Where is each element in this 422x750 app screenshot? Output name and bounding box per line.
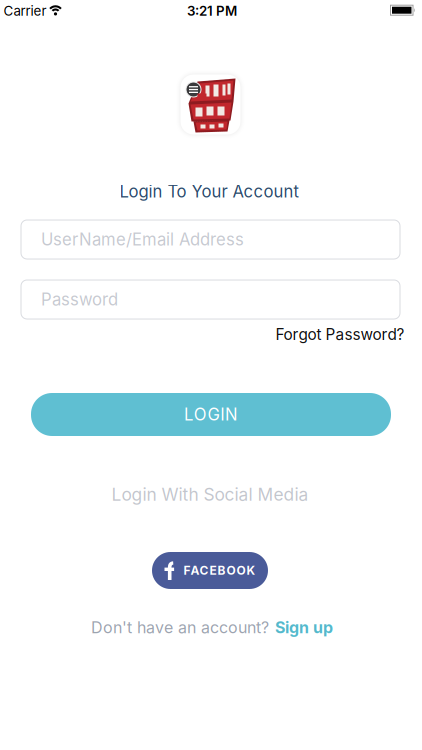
button[interactable]: FACEBOOK <box>152 552 268 589</box>
staticText: Carrier <box>3 3 46 19</box>
button[interactable]: Forgot Password? <box>275 325 404 344</box>
staticText: Password <box>41 289 118 310</box>
staticText: UserName/Email Address <box>41 229 244 250</box>
staticText: Don't have an account? <box>91 618 269 637</box>
staticText: Forgot Password? <box>275 325 404 344</box>
button[interactable]: LOGIN <box>31 393 391 436</box>
staticText: Sign up <box>275 618 333 637</box>
staticText: LOGIN <box>184 404 238 425</box>
button[interactable]: Sign up <box>275 618 333 637</box>
staticText: FACEBOOK <box>183 563 255 578</box>
staticText: 3:21 PM <box>187 3 237 19</box>
staticText: Login To Your Account <box>119 181 298 202</box>
staticText: Login With Social Media <box>111 484 308 505</box>
